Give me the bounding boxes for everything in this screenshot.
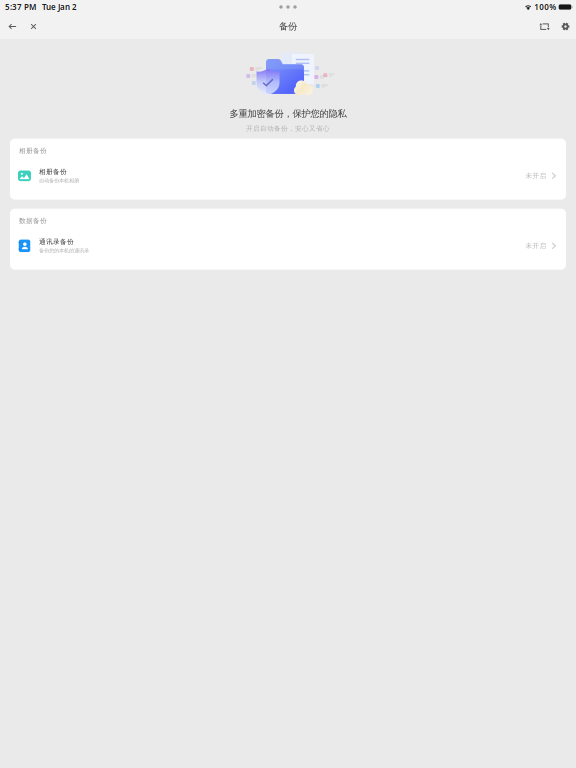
button[interactable]: 通讯录备份 — [10, 232, 566, 260]
button[interactable]: Restore — [534, 15, 555, 37]
staticText: 备份 — [279, 21, 297, 32]
staticText: 备份您的本机的通讯录 — [39, 247, 89, 254]
staticText: 自动备份本机相册 — [39, 177, 79, 184]
staticText: 相册备份 — [19, 147, 47, 155]
staticText: 多重加密备份，保护您的隐私 — [229, 108, 346, 119]
staticText: 5:37 PM — [5, 2, 36, 12]
staticText: Tue Jan 2 — [42, 2, 77, 12]
button[interactable]: 相册备份 — [10, 162, 566, 190]
staticText: 相册备份 — [39, 168, 67, 176]
staticText: 通讯录备份 — [39, 238, 74, 246]
staticText: 未开启 — [526, 172, 547, 180]
button[interactable]: Close — [23, 15, 44, 37]
staticText: 数据备份 — [19, 217, 47, 225]
staticText: 开启自动备份，安心又省心 — [246, 124, 330, 133]
button[interactable]: Back — [2, 15, 23, 37]
staticText: 100% — [534, 2, 556, 12]
staticText: 未开启 — [526, 242, 547, 250]
button[interactable]: Settings — [555, 15, 576, 37]
